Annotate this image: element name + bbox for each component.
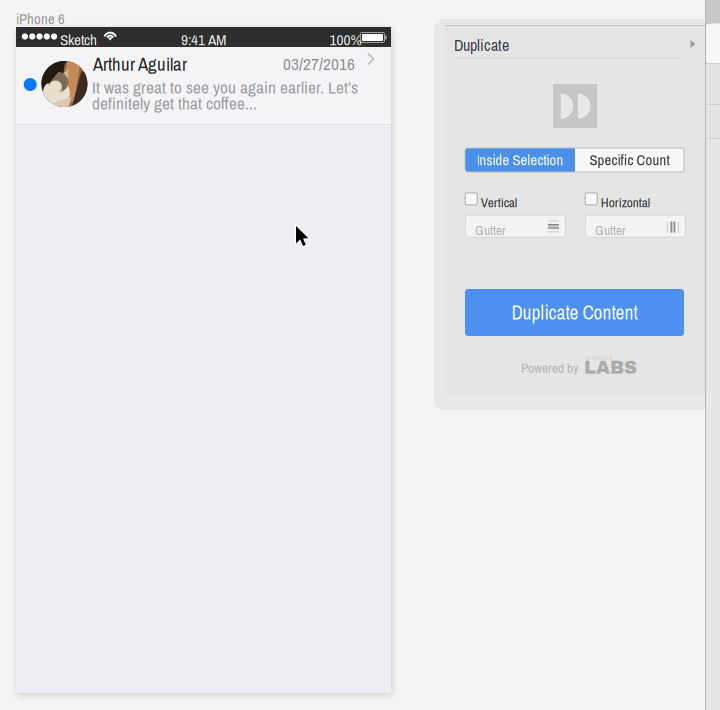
staticText: Horizontal — [601, 193, 650, 211]
staticText: Duplicate — [454, 34, 509, 56]
button[interactable]: Horizontal — [585, 193, 685, 206]
staticText: 03/27/2016 — [283, 52, 355, 75]
button[interactable]: Specific Count — [575, 148, 684, 172]
button[interactable]: Collapse panel — [683, 34, 703, 54]
staticText: I N V I S I O N — [585, 354, 613, 362]
button[interactable]: Arthur Aguilar — [16, 47, 391, 124]
staticText: LABS — [584, 358, 637, 378]
button[interactable]: Duplicate Content — [465, 289, 684, 336]
staticText: Gutter — [595, 221, 626, 239]
button[interactable]: Vertical — [465, 193, 565, 206]
staticText: It was great to see you again earlier. L… — [92, 75, 358, 99]
staticText: Sketch — [60, 29, 97, 50]
staticText: 9:41 AM — [181, 29, 226, 50]
staticText: iPhone 6 — [16, 9, 65, 29]
button[interactable]: Inside Selection — [465, 148, 575, 172]
staticText: 100% — [329, 29, 361, 50]
staticText: definitely get that coffee... — [92, 91, 257, 115]
staticText: Vertical — [481, 193, 517, 211]
staticText: Arthur Aguilar — [93, 51, 187, 76]
staticText: Gutter — [475, 221, 506, 239]
staticText: Specific Count — [589, 150, 669, 170]
staticText: Inside Selection — [476, 150, 563, 170]
staticText: Duplicate Content — [511, 299, 637, 325]
staticText: Powered by — [521, 359, 578, 377]
